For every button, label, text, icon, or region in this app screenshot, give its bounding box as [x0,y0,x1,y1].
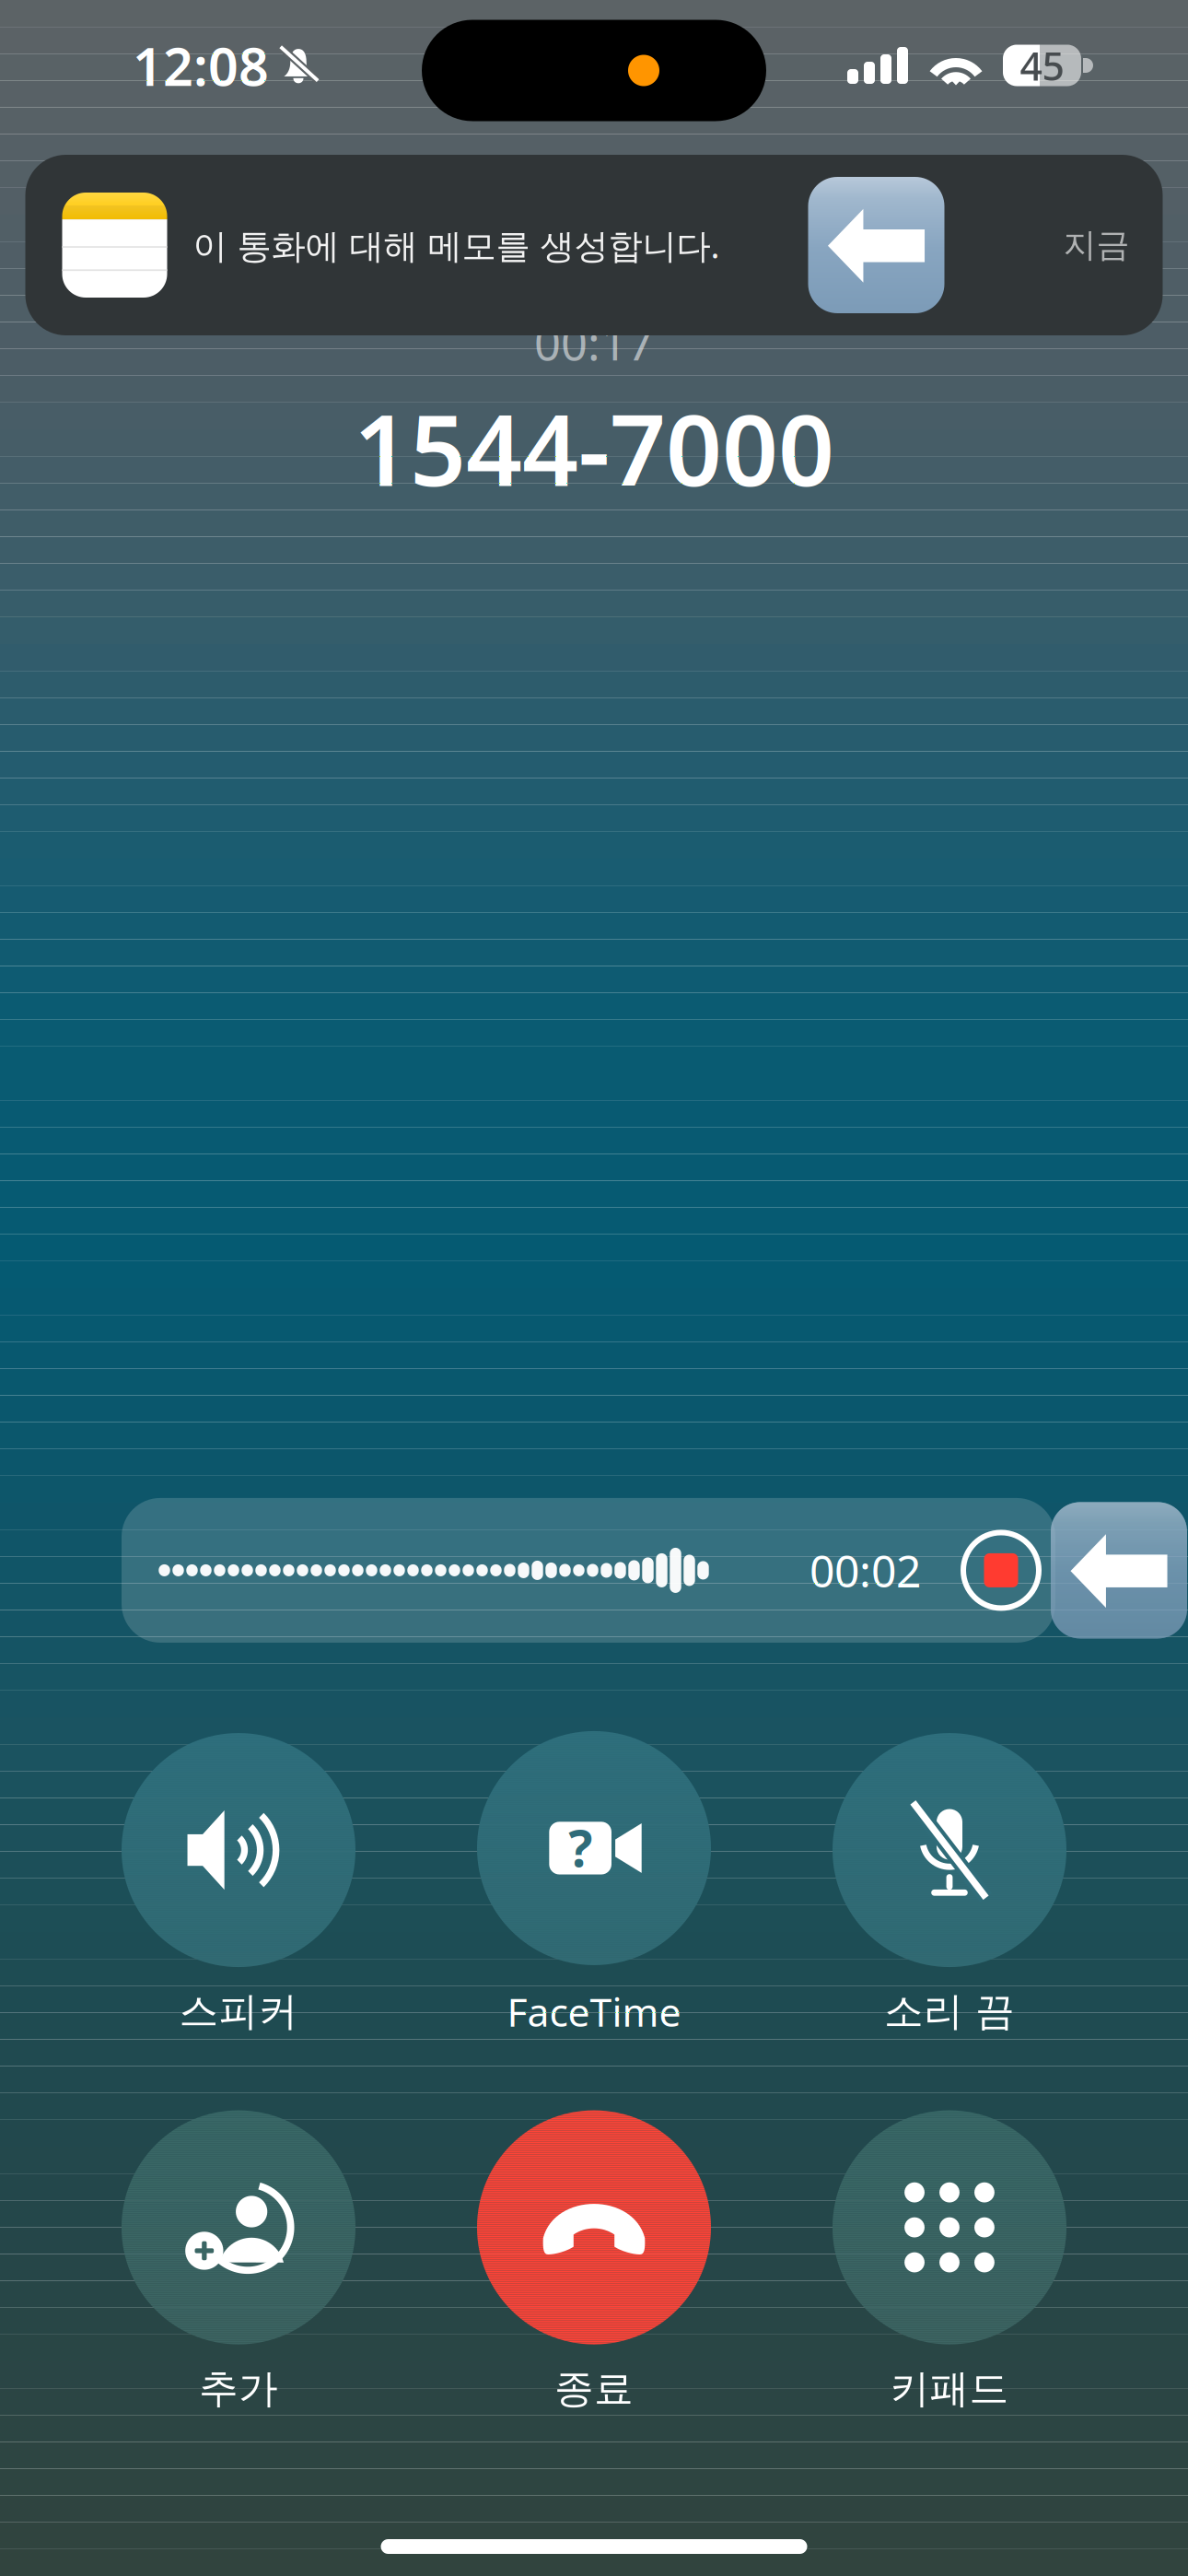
button[interactable]: 이 통화에 대해 메모를 생성합니다. [25,155,1163,335]
staticText: 이 통화에 대해 메모를 생성합니다. [193,222,720,268]
button[interactable]: Stop recording [963,1533,1039,1608]
staticText: ? [568,1814,592,1881]
staticText: 12:08 [133,30,269,100]
staticText: 스피커 [179,1987,298,2036]
button[interactable]: 추가 [61,2110,416,2413]
staticText: 1544-7000 [354,383,834,513]
button[interactable]: 종료 [416,2110,772,2413]
button[interactable]: 스피커 [61,1733,416,2036]
button[interactable]: ? [416,1731,772,2038]
staticText: 지금 [1063,225,1130,265]
button[interactable]: 키패드 [772,2110,1127,2413]
staticText: 추가 [199,2365,278,2413]
staticText: 00:17 [534,311,654,373]
button[interactable]: 소리 끔 [772,1733,1127,2036]
staticText: 00:02 [809,1541,921,1600]
staticText: FaceTime [507,1985,681,2038]
staticText: 종료 [554,2365,634,2413]
staticText: 45 [1020,39,1064,92]
staticText: 소리 끔 [884,1987,1015,2036]
staticText: 키패드 [890,2365,1009,2413]
